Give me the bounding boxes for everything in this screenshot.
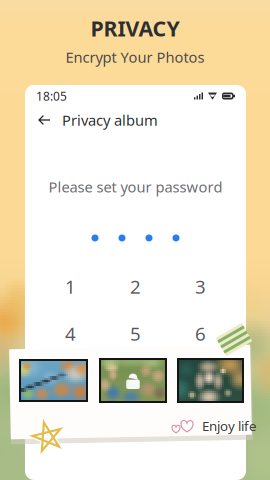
staticText: Privacy album xyxy=(62,110,158,130)
staticText: 18:05 xyxy=(36,88,67,104)
button[interactable]: 6 xyxy=(168,324,233,342)
button[interactable]: 5 xyxy=(103,324,168,342)
button[interactable]: Back xyxy=(36,111,53,128)
staticText: Enjoy life xyxy=(202,417,257,435)
staticText: 5 xyxy=(130,321,141,346)
staticText: 1 xyxy=(65,274,76,299)
button[interactable]: 4 xyxy=(38,324,103,342)
button[interactable]: 2 xyxy=(103,277,168,295)
button[interactable]: 1 xyxy=(38,277,103,295)
staticText: 3 xyxy=(195,274,206,299)
staticText: Please set your password xyxy=(48,177,222,196)
button[interactable]: 3 xyxy=(168,277,233,295)
staticText: 6 xyxy=(195,321,206,346)
staticText: 2 xyxy=(130,274,141,299)
staticText: Encrypt Your Photos xyxy=(65,47,204,67)
staticText: 4 xyxy=(65,321,76,346)
staticText: PRIVACY xyxy=(90,14,179,42)
